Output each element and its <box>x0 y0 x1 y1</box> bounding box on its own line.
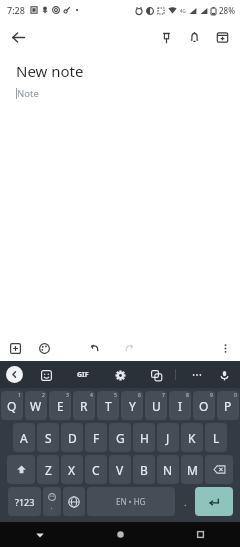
staticText: I <box>178 398 183 414</box>
staticText: L <box>213 430 220 446</box>
staticText: 6 <box>138 392 141 399</box>
button[interactable]: Back <box>0 522 80 547</box>
button[interactable]: O <box>193 391 215 420</box>
button[interactable]: A <box>13 423 35 452</box>
button[interactable]: L <box>205 423 227 452</box>
button[interactable]: Pin <box>152 23 180 51</box>
button[interactable]: Emoji key <box>43 487 61 516</box>
staticText: G <box>116 430 125 446</box>
staticText: New note <box>16 61 84 81</box>
staticText: ?123 <box>15 496 35 508</box>
staticText: U <box>152 398 161 414</box>
staticText: K <box>188 430 196 446</box>
button[interactable]: Archive <box>208 23 236 51</box>
staticText: S <box>45 430 52 446</box>
button[interactable]: U <box>145 391 167 420</box>
button[interactable]: Color palette <box>33 337 55 359</box>
button[interactable]: P <box>217 391 239 420</box>
button[interactable]: M <box>181 455 203 484</box>
button[interactable]: Emoji <box>37 366 55 384</box>
button[interactable]: Back <box>4 23 32 51</box>
button[interactable]: S <box>37 423 59 452</box>
staticText: 4G <box>180 8 186 14</box>
button[interactable]: Undo <box>84 337 106 359</box>
button[interactable]: N <box>157 455 179 484</box>
button[interactable]: More <box>188 366 206 384</box>
staticText: J <box>166 430 170 446</box>
staticText: 4 <box>90 392 93 399</box>
button[interactable]: Y <box>121 391 143 420</box>
button[interactable]: . <box>177 487 193 516</box>
button[interactable]: Q <box>1 391 23 420</box>
staticText: V <box>116 462 124 478</box>
button[interactable]: V <box>109 455 131 484</box>
button[interactable]: Voice input <box>214 365 234 385</box>
button[interactable]: Home <box>80 522 160 547</box>
button[interactable]: Z <box>37 455 59 484</box>
button[interactable]: Shift <box>7 455 35 484</box>
staticText: Y <box>129 398 136 414</box>
staticText: , <box>51 503 53 511</box>
staticText: C <box>92 462 100 478</box>
button[interactable]: Settings <box>111 366 129 384</box>
staticText: H <box>140 430 149 446</box>
staticText: 8 <box>186 392 189 399</box>
button[interactable]: EN • HG <box>87 487 175 516</box>
staticText: N <box>163 462 173 478</box>
staticText: Z <box>45 462 52 478</box>
button[interactable]: B <box>133 455 155 484</box>
button[interactable]: Change language <box>63 487 85 516</box>
staticText: 5 <box>114 392 117 399</box>
staticText: T <box>105 398 112 414</box>
staticText: 0 <box>234 392 237 399</box>
staticText: M <box>187 462 198 478</box>
staticText: F <box>93 430 100 446</box>
staticText: R <box>80 398 88 414</box>
staticText: 1 <box>18 392 21 399</box>
staticText: EN • HG <box>116 496 146 507</box>
staticText: 7:28 <box>7 4 25 16</box>
button[interactable]: More options <box>214 337 236 359</box>
button[interactable]: Recent apps <box>160 522 240 547</box>
button[interactable]: Add <box>4 337 26 359</box>
staticText: D <box>68 430 77 446</box>
button[interactable]: R <box>73 391 95 420</box>
button[interactable]: E <box>49 391 71 420</box>
button[interactable]: T <box>97 391 119 420</box>
staticText: Note <box>17 87 39 100</box>
staticText: P <box>224 398 232 414</box>
staticText: E <box>57 398 64 414</box>
button[interactable]: W <box>25 391 47 420</box>
staticText: W <box>30 398 42 414</box>
staticText: 9 <box>210 392 213 399</box>
button[interactable]: X <box>61 455 83 484</box>
staticText: 7 <box>162 392 165 399</box>
button[interactable]: Backspace <box>205 455 233 484</box>
staticText: X <box>68 462 76 478</box>
staticText: B <box>140 462 148 478</box>
button[interactable]: GIF <box>73 365 93 385</box>
button[interactable]: J <box>157 423 179 452</box>
staticText: 2 <box>42 392 45 399</box>
button[interactable]: Expand toolbar <box>6 366 23 383</box>
staticText: O <box>199 398 209 414</box>
staticText: 28% <box>219 5 235 16</box>
button[interactable]: G <box>109 423 131 452</box>
staticText: 3 <box>66 392 69 399</box>
button[interactable]: K <box>181 423 203 452</box>
staticText: Q <box>7 398 17 414</box>
button[interactable]: Reminder <box>180 23 208 51</box>
button[interactable]: C <box>85 455 107 484</box>
button[interactable]: ?123 <box>8 487 41 516</box>
staticText: A <box>20 430 28 446</box>
button[interactable]: H <box>133 423 155 452</box>
staticText: . <box>184 496 187 508</box>
button[interactable]: D <box>61 423 83 452</box>
button[interactable]: F <box>85 423 107 452</box>
button[interactable]: Translate <box>147 366 165 384</box>
staticText: GIF <box>77 370 89 380</box>
button[interactable]: I <box>169 391 191 420</box>
button[interactable]: Redo <box>118 337 140 359</box>
button[interactable]: Enter <box>195 487 233 516</box>
